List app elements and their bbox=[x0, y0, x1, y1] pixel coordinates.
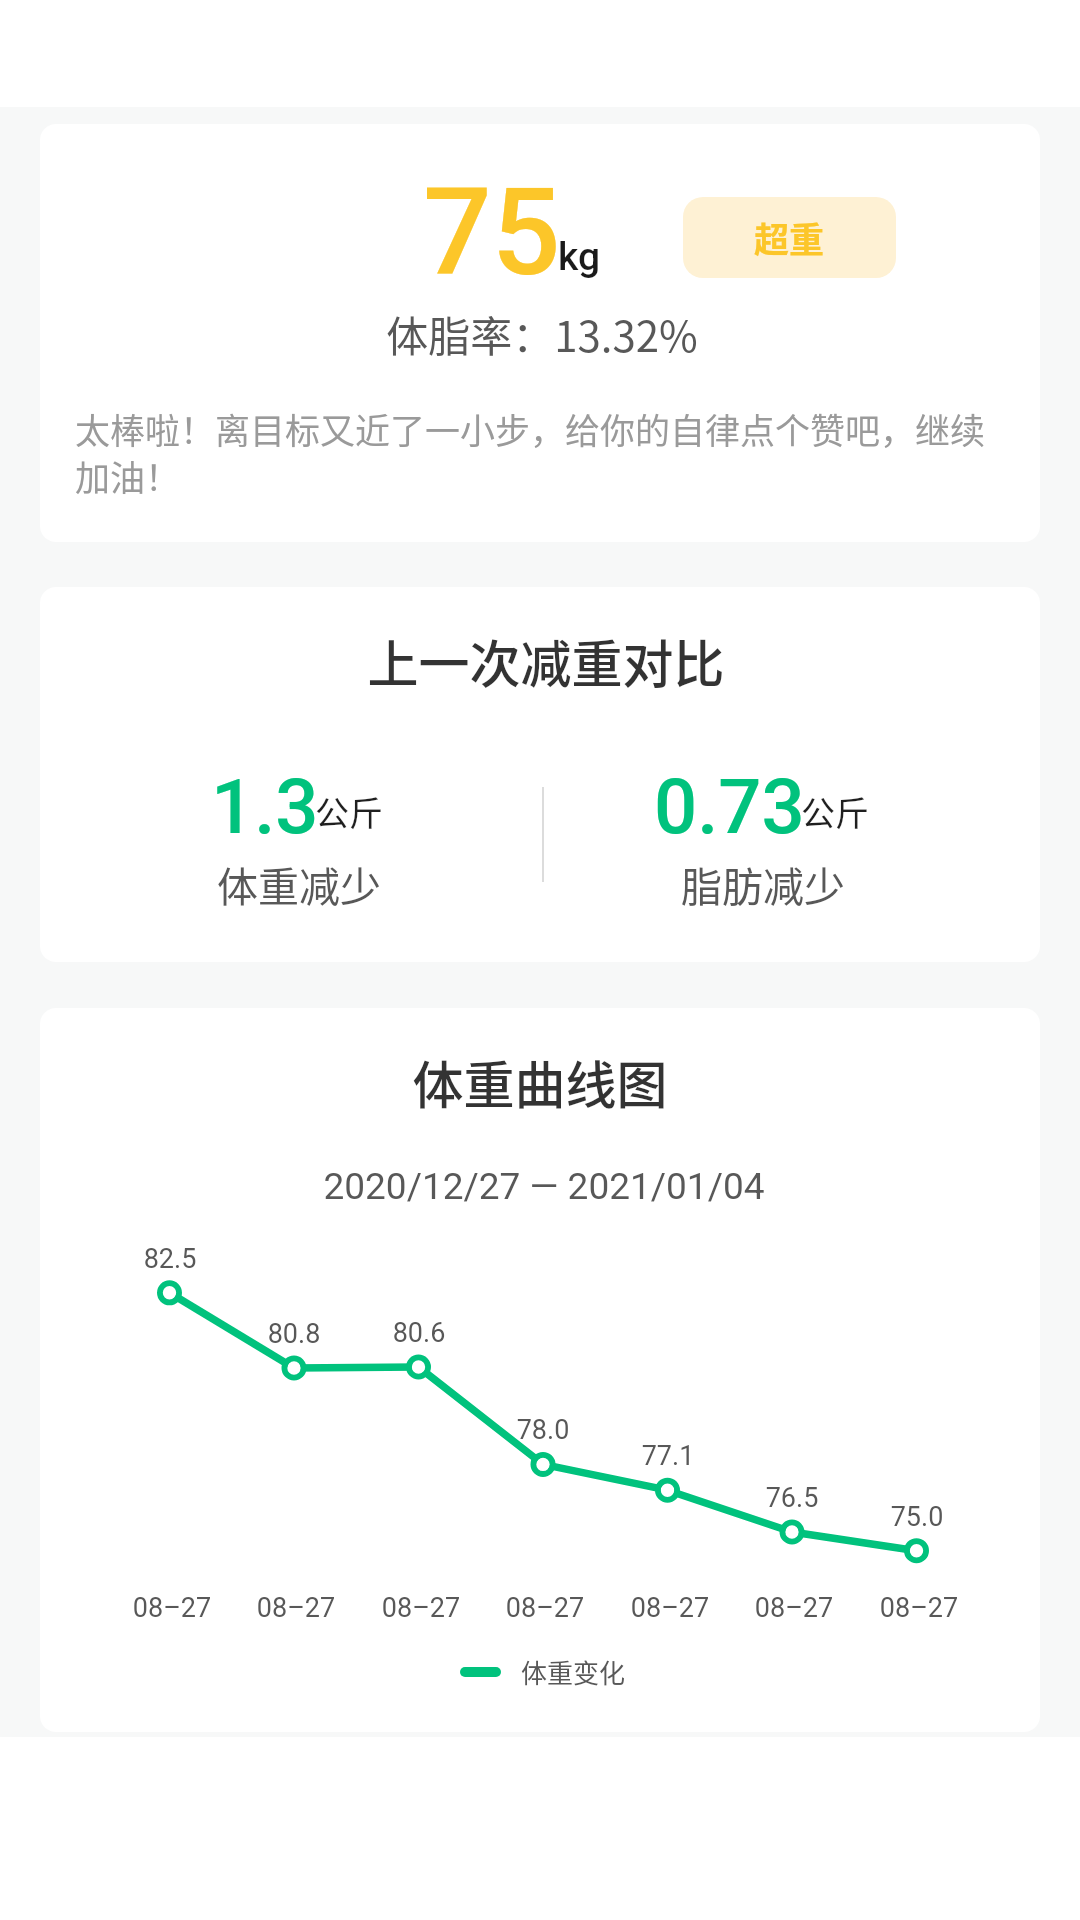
staticText: 08–27 bbox=[849, 1592, 989, 1624]
other: Weight change series bbox=[460, 1667, 501, 1677]
staticText: 1.3 bbox=[211, 762, 319, 851]
staticText: 08–27 bbox=[475, 1592, 615, 1624]
staticText: 体重曲线图 bbox=[40, 1045, 1040, 1119]
button[interactable]: Weight change series bbox=[43, 1653, 1040, 1691]
staticText: 82.5 bbox=[100, 1243, 240, 1275]
staticText: 超重 bbox=[754, 212, 825, 263]
staticText: 78.0 bbox=[473, 1414, 613, 1446]
staticText: 75.0 bbox=[847, 1501, 987, 1533]
staticText: 80.8 bbox=[224, 1318, 364, 1350]
staticText: 08–27 bbox=[102, 1592, 242, 1624]
staticText: 08–27 bbox=[226, 1592, 366, 1624]
staticText: 08–27 bbox=[724, 1592, 864, 1624]
button[interactable]: 体重曲线图 bbox=[40, 1008, 1040, 1732]
staticText: 脂肪减少 bbox=[463, 854, 1040, 913]
staticText: 上一次减重对比 bbox=[46, 624, 1040, 698]
staticText: 公斤 bbox=[315, 787, 383, 836]
staticText: kg bbox=[558, 234, 601, 280]
staticText: 08–27 bbox=[600, 1592, 740, 1624]
staticText: 76.5 bbox=[722, 1482, 862, 1514]
staticText: 体脂率：13.32% bbox=[42, 303, 1040, 364]
staticText: 08–27 bbox=[351, 1592, 491, 1624]
staticText: 2020/12/27 — 2021/01/04 bbox=[44, 1165, 1040, 1208]
staticText: 体重变化 bbox=[521, 1653, 626, 1691]
staticText: 太棒啦！离目标又近了一小步，给你的自律点个赞吧，继续加油！ bbox=[75, 403, 1005, 501]
staticText: 75 bbox=[423, 162, 561, 304]
button[interactable]: 上一次减重对比 bbox=[40, 587, 1040, 962]
staticText: 0.73 bbox=[654, 762, 805, 851]
button[interactable]: 75 bbox=[40, 124, 1040, 542]
staticText: 77.1 bbox=[598, 1440, 738, 1472]
staticText: 体重减少 bbox=[40, 854, 599, 913]
staticText: 公斤 bbox=[801, 787, 869, 836]
staticText: 80.6 bbox=[349, 1317, 489, 1349]
button[interactable]: 超重 bbox=[683, 197, 896, 278]
